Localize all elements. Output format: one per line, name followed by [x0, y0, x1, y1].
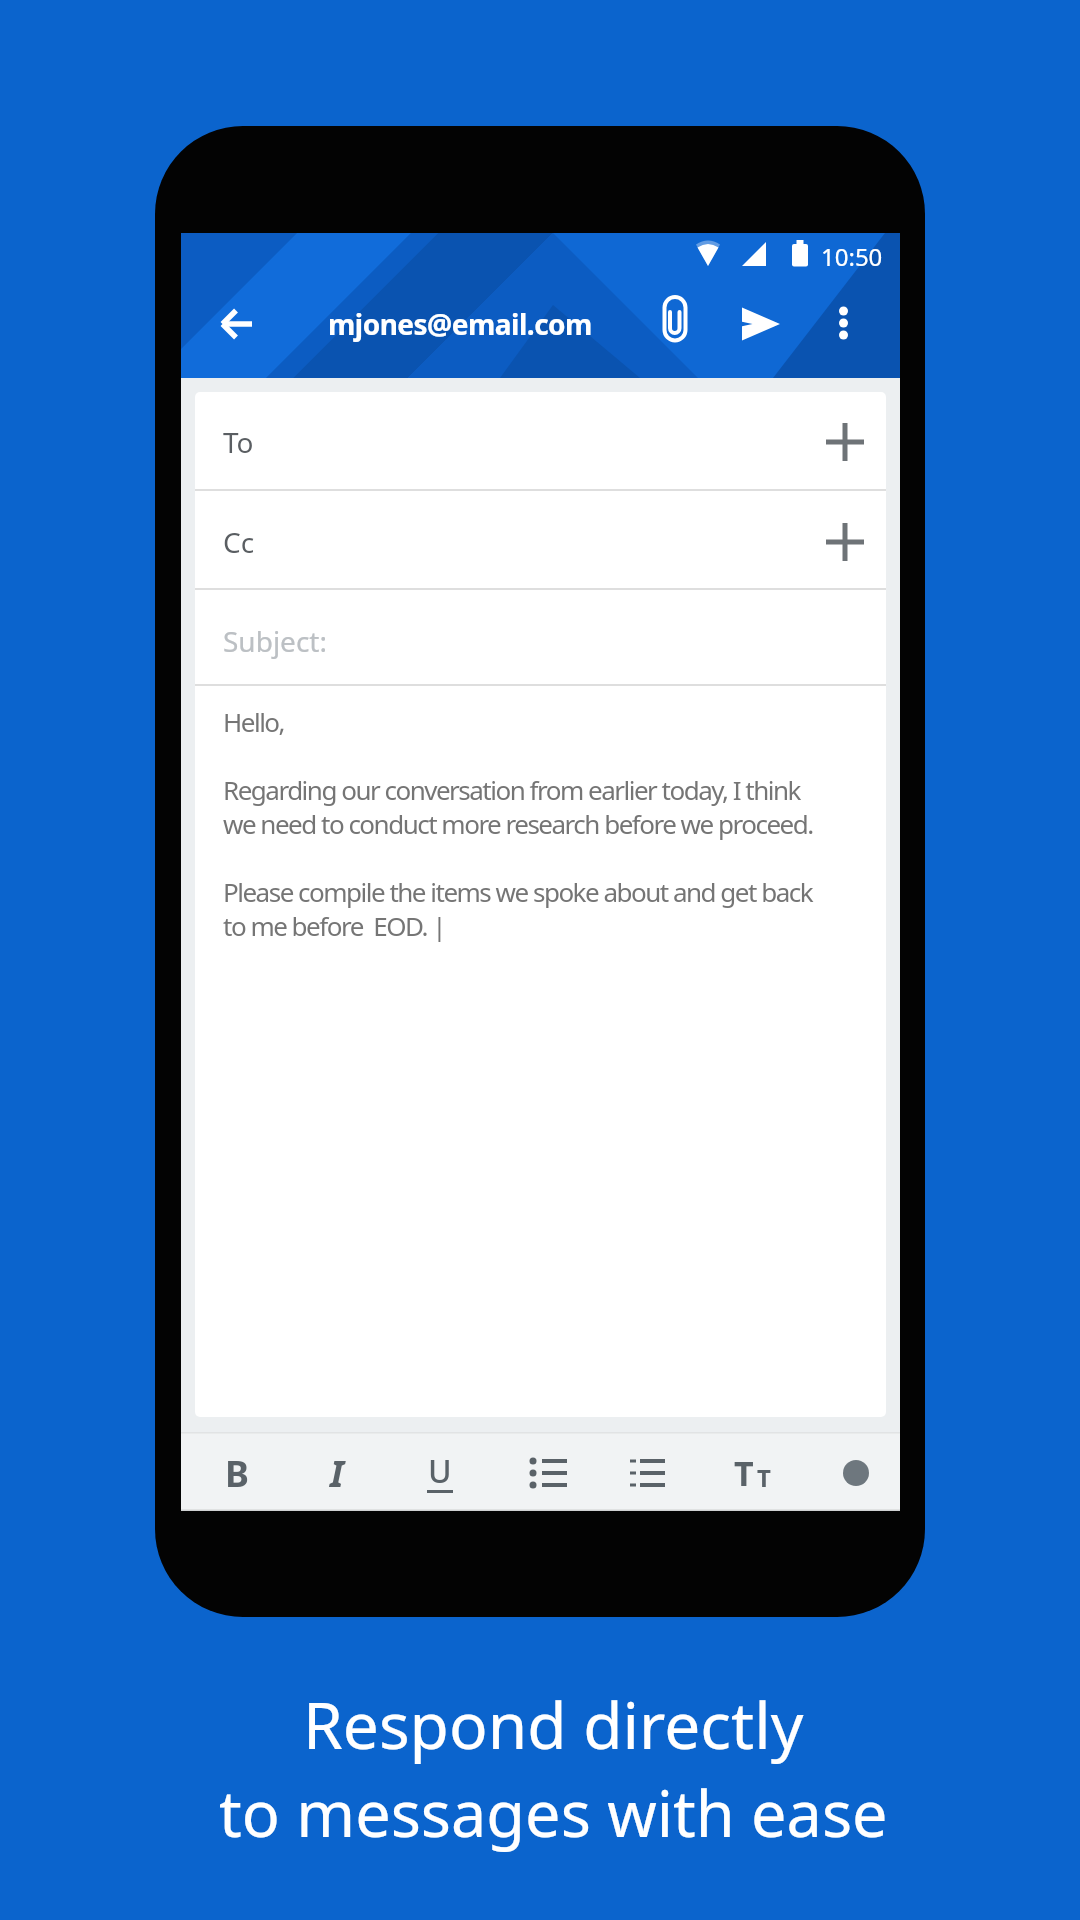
staticText: To: [223, 423, 254, 461]
staticText: I: [330, 1449, 344, 1498]
staticText: to messages with ease: [219, 1770, 888, 1856]
staticText: T: [734, 1450, 754, 1496]
staticText: Subject:: [223, 622, 327, 660]
staticText: mjones@email.com: [328, 305, 592, 343]
staticText: B: [225, 1449, 249, 1498]
staticText: T: [757, 1461, 771, 1494]
staticText: Hello, Regarding our conversation from e…: [223, 704, 813, 943]
staticText: U: [428, 1449, 452, 1493]
staticText: 10:50: [821, 240, 883, 273]
staticText: Cc: [223, 523, 255, 561]
staticText: Respond directly: [303, 1681, 804, 1768]
